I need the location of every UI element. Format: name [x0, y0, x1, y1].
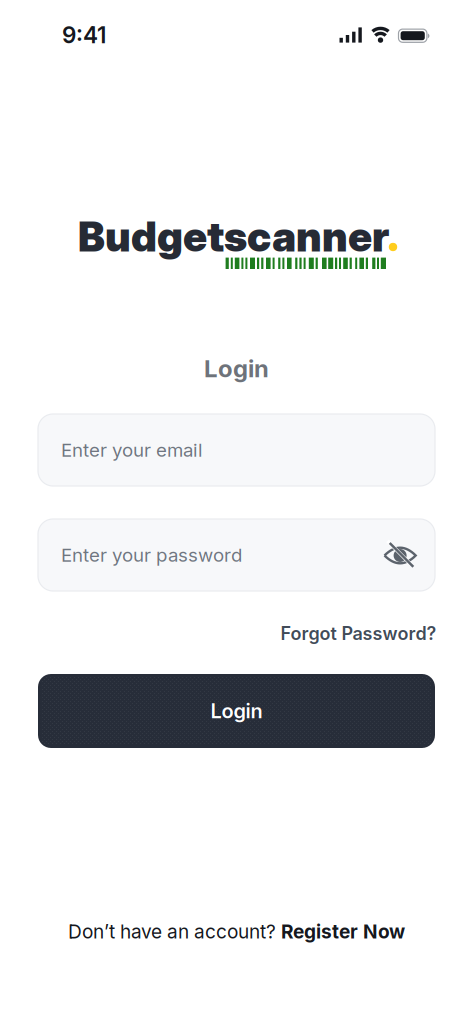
staticText: 9:41 — [62, 21, 106, 49]
button[interactable]: Show password — [375, 536, 424, 574]
button[interactable]: Login — [38, 674, 435, 748]
staticText: Register Now — [281, 920, 405, 943]
button[interactable]: Forgot Password? — [280, 623, 436, 644]
button[interactable]: Register Now — [281, 920, 405, 943]
staticText: Forgot Password? — [280, 623, 436, 644]
staticText: Don’t have an account? — [68, 920, 281, 943]
staticText: Budgetscanner — [78, 211, 389, 261]
staticText: Login — [204, 354, 269, 383]
staticText: Enter your email — [61, 439, 203, 461]
button[interactable]: Enter your password — [38, 519, 435, 591]
staticText: Login — [210, 699, 262, 723]
staticText: Enter your password — [61, 544, 242, 566]
button[interactable]: Enter your email — [38, 414, 435, 486]
